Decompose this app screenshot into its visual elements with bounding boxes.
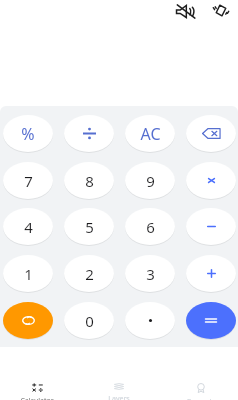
button[interactable]: Divide (64, 115, 114, 152)
button[interactable]: AC (125, 115, 175, 152)
button[interactable]: 7 (3, 162, 53, 199)
button[interactable]: Subtract (186, 208, 236, 245)
button[interactable]: % (3, 115, 53, 152)
button[interactable]: Equals (186, 302, 236, 339)
button[interactable]: Convert (3, 302, 53, 339)
staticText: % (21, 123, 35, 145)
staticText: 0 (85, 311, 94, 331)
button[interactable]: 9 (125, 162, 175, 199)
button[interactable]: 6 (125, 208, 175, 245)
button[interactable]: 2 (64, 255, 114, 292)
button[interactable]: Sound off (174, 4, 196, 19)
button[interactable]: 3 (125, 255, 175, 292)
button[interactable]: Backspace (186, 115, 236, 152)
button[interactable]: 4 (3, 208, 53, 245)
button[interactable]: Calculator (7, 373, 67, 400)
staticText: 1 (24, 264, 33, 284)
staticText: 7 (24, 171, 33, 191)
button[interactable]: Decimal point (125, 302, 175, 339)
button[interactable]: 5 (64, 208, 114, 245)
staticText: Layers (108, 394, 130, 400)
staticText: 8 (85, 171, 94, 191)
button[interactable]: Multiply (186, 162, 236, 199)
button[interactable]: 0 (64, 302, 114, 339)
button[interactable]: Layers (89, 373, 149, 400)
button[interactable]: Rewards (171, 373, 231, 400)
staticText: Rewards (187, 397, 215, 400)
staticText: 3 (146, 264, 155, 284)
staticText: 5 (85, 217, 94, 237)
staticText: 6 (146, 217, 155, 237)
button[interactable]: 8 (64, 162, 114, 199)
button[interactable]: Add (186, 255, 236, 292)
staticText: 2 (85, 264, 94, 284)
staticText: 4 (24, 217, 33, 237)
staticText: 9 (146, 171, 155, 191)
button[interactable]: 1 (3, 255, 53, 292)
staticText: AC (140, 123, 161, 145)
staticText: Calculator (20, 396, 54, 400)
button[interactable]: Vibrate (213, 4, 229, 17)
